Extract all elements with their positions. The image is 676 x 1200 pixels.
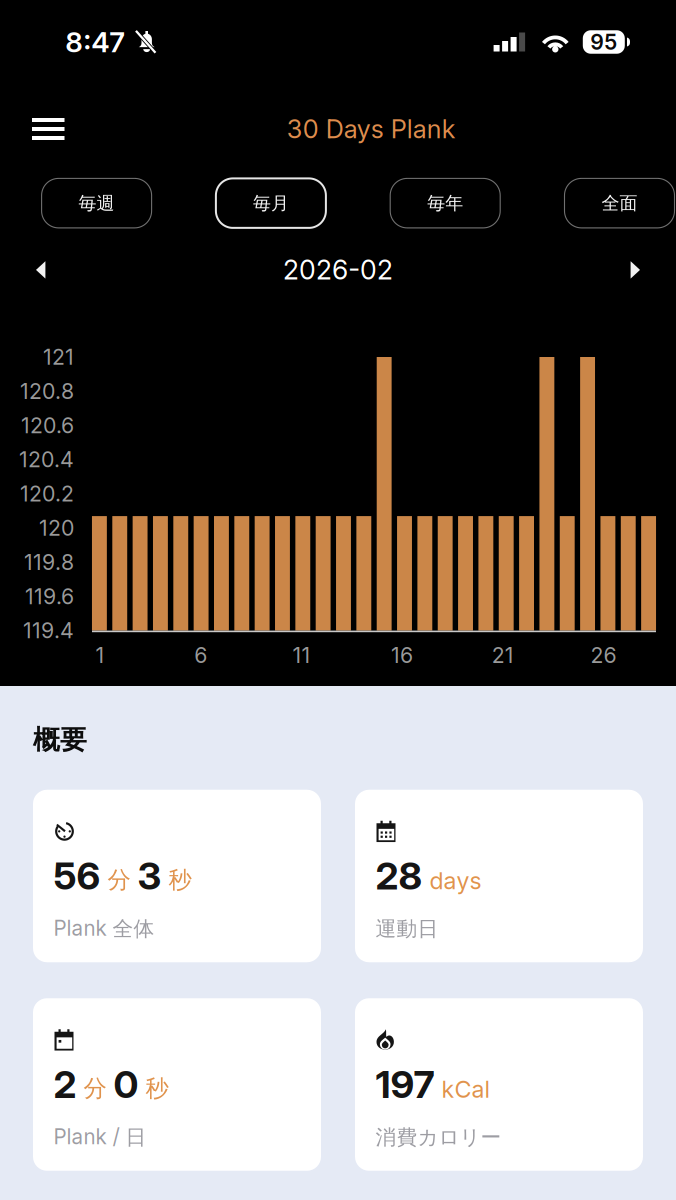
staticText: 分 [107,865,130,895]
staticText: 197 [375,1061,434,1107]
button[interactable]: 全面 [564,178,674,228]
staticText: 秒 [145,1074,168,1103]
button[interactable]: 毎月 [216,178,326,228]
staticText: 120.6 [21,412,74,438]
button[interactable]: 2 [33,998,321,1171]
staticText: Plank 全体 [53,916,154,942]
staticText: 21 [492,642,514,668]
staticText: 120.4 [19,447,74,472]
staticText: 16 [391,642,413,668]
staticText: 全面 [601,192,637,214]
staticText: 119.8 [24,549,74,575]
button[interactable]: 毎年 [390,178,500,228]
button[interactable]: Previous period [0,247,61,293]
button[interactable]: 56 [33,790,321,962]
staticText: 121 [43,344,74,370]
staticText: 6 [194,642,207,668]
staticText: 秒 [168,865,191,895]
staticText: days [429,866,481,895]
staticText: 120.2 [20,481,74,507]
staticText: 2026-02 [283,254,393,286]
staticText: 毎年 [427,192,463,214]
staticText: 56 [53,853,100,899]
button[interactable]: 197 [355,998,643,1171]
staticText: 28 [375,853,422,899]
staticText: 8:47 [65,25,125,59]
staticText: 1 [95,642,104,668]
button[interactable]: 毎週 [42,178,152,228]
staticText: 概要 [33,723,87,756]
staticText: 運動日 [375,916,438,942]
staticText: 26 [590,642,616,668]
staticText: Plank / 日 [53,1124,146,1150]
button[interactable]: Menu [0,105,78,153]
staticText: 120.8 [20,378,74,404]
staticText: 毎週 [79,192,115,214]
staticText: 2 [53,1061,76,1107]
staticText: 毎月 [253,192,289,214]
staticText: 95 [590,29,617,55]
staticText: 119.6 [25,583,74,609]
staticText: 11 [292,642,310,668]
button[interactable]: 28 [355,790,643,962]
staticText: 分 [83,1074,106,1103]
staticText: 0 [113,1061,138,1107]
staticText: 119.4 [23,618,74,643]
staticText: kCal [441,1075,489,1103]
staticText: 30 Days Plank [287,114,456,144]
staticText: 消費カロリー [375,1124,501,1150]
staticText: 120 [39,515,74,541]
staticText: 3 [137,853,161,899]
button[interactable]: Next period [615,247,676,293]
